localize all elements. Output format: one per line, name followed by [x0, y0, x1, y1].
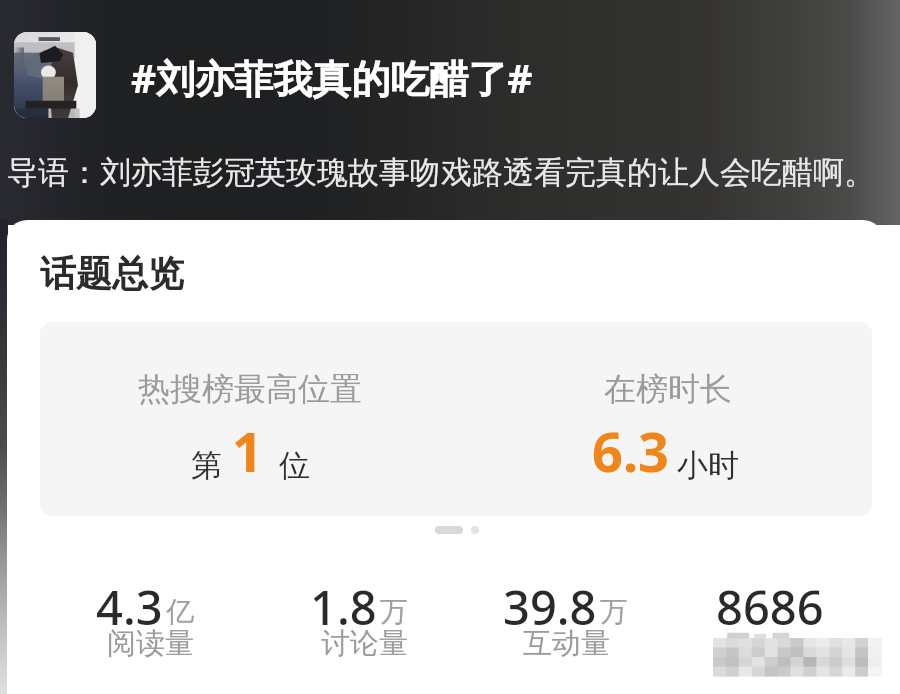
staticText: 阅读量 [107, 625, 194, 662]
staticText: 万 [600, 594, 628, 629]
staticText: 在榜时长 [604, 369, 732, 409]
staticText: 4.3 [96, 575, 163, 639]
staticText: 亿 [166, 594, 194, 629]
staticText: 第 [191, 446, 222, 485]
button[interactable]: 1.8 [288, 560, 488, 680]
staticText: 8686 [716, 575, 824, 639]
staticText: 热搜榜最高位置 [138, 369, 362, 409]
staticText: 导语：刘亦菲彭冠英玫瑰故事吻戏路透看完真的让人会吃醋啊。 [7, 153, 875, 192]
button[interactable]: 第 2 页 [471, 526, 479, 534]
button[interactable]: #刘亦菲我真的吃醋了# [120, 34, 550, 116]
staticText: #刘亦菲我真的吃醋了# [131, 51, 533, 104]
staticText: 1 [232, 414, 263, 488]
staticText: 小时 [677, 446, 739, 485]
staticText: 1.8 [310, 575, 377, 639]
button[interactable]: 第 1 页 [435, 526, 463, 534]
staticText: 万 [380, 594, 408, 629]
button[interactable]: 4.3 [74, 560, 274, 680]
staticText: 互动量 [523, 625, 610, 662]
button[interactable]: 39.8 [481, 560, 681, 680]
staticText: 39.8 [503, 575, 597, 639]
button[interactable]: 热搜榜最高位置 [40, 322, 456, 516]
button[interactable]: 在榜时长 [456, 322, 872, 516]
button[interactable]: 8686 [694, 560, 883, 680]
staticText: 位 [279, 446, 310, 485]
staticText: 讨论量 [321, 625, 408, 662]
staticText: 6.3 [592, 414, 669, 488]
button[interactable]: 话题配图 [14, 32, 96, 118]
staticText: 话题总览 [40, 251, 184, 296]
